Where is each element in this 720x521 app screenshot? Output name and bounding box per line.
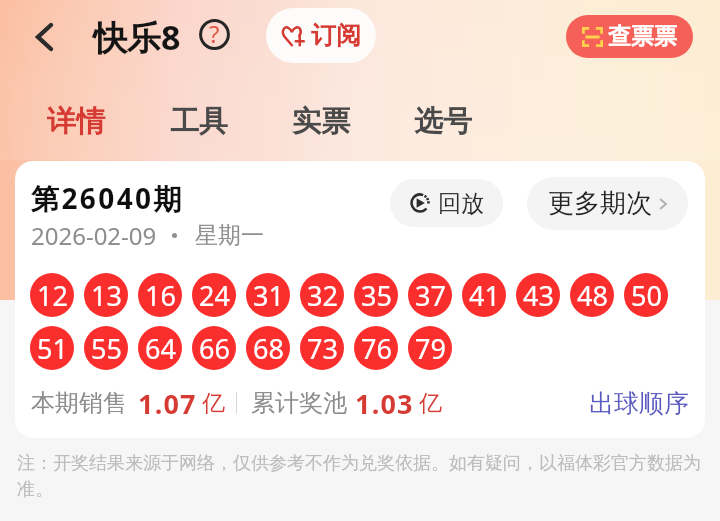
staticText: 79 (415, 330, 446, 367)
button[interactable]: 回放 (390, 179, 503, 227)
staticText: 注：开奖结果来源于网络，仅供参考不作为兑奖依据。如有疑问，以福体彩官方数据为准。 (17, 452, 703, 500)
staticText: 31 (253, 277, 284, 314)
staticText: 68 (253, 330, 284, 367)
button[interactable]: 查票票 (566, 15, 693, 58)
staticText: ? (209, 17, 220, 50)
staticText: 实票 (292, 103, 350, 140)
staticText: 12 (37, 277, 68, 314)
staticText: 76 (361, 330, 392, 367)
button[interactable]: 详情 (37, 96, 115, 147)
staticText: 13 (91, 277, 122, 314)
staticText: 1.03 (355, 385, 414, 422)
staticText: 32 (307, 277, 338, 314)
staticText: 出球顺序 (589, 388, 689, 419)
staticText: 选号 (414, 103, 472, 140)
staticText: 41 (469, 277, 500, 314)
staticText: 50 (631, 277, 662, 314)
button[interactable]: 订阅 (266, 8, 376, 63)
button[interactable]: 工具 (160, 96, 238, 147)
staticText: 订阅 (311, 20, 361, 51)
staticText: 本期销售 (31, 388, 127, 418)
staticText: 亿 (202, 389, 225, 418)
staticText: 累计奖池 (251, 388, 347, 418)
button[interactable]: Back (20, 13, 68, 61)
staticText: 66 (199, 330, 230, 367)
button[interactable]: Help (197, 17, 232, 52)
staticText: 亿 (419, 389, 442, 418)
staticText: 16 (145, 277, 176, 314)
staticText: 详情 (47, 103, 105, 140)
staticText: 64 (145, 330, 176, 367)
staticText: 查票票 (608, 22, 677, 51)
button[interactable]: 选号 (404, 96, 482, 147)
staticText: 35 (361, 277, 392, 314)
staticText: 回放 (438, 189, 484, 218)
button[interactable]: 出球顺序 (589, 388, 689, 419)
staticText: 48 (577, 277, 608, 314)
staticText: 更多期次 (548, 187, 652, 220)
staticText: 1.07 (138, 385, 197, 422)
button[interactable]: 实票 (282, 96, 360, 147)
staticText: 2026-02-09 (31, 219, 157, 252)
staticText: 55 (91, 330, 122, 367)
staticText: 51 (37, 330, 68, 367)
staticText: 工具 (170, 103, 228, 140)
button[interactable]: 更多期次 (527, 177, 688, 230)
staticText: 73 (307, 330, 338, 367)
staticText: 43 (523, 277, 554, 314)
staticText: 快乐8 (93, 14, 181, 60)
staticText: 第26040期 (31, 179, 184, 217)
staticText: 星期一 (195, 221, 264, 250)
staticText: 24 (199, 277, 230, 314)
staticText: 37 (415, 277, 446, 314)
